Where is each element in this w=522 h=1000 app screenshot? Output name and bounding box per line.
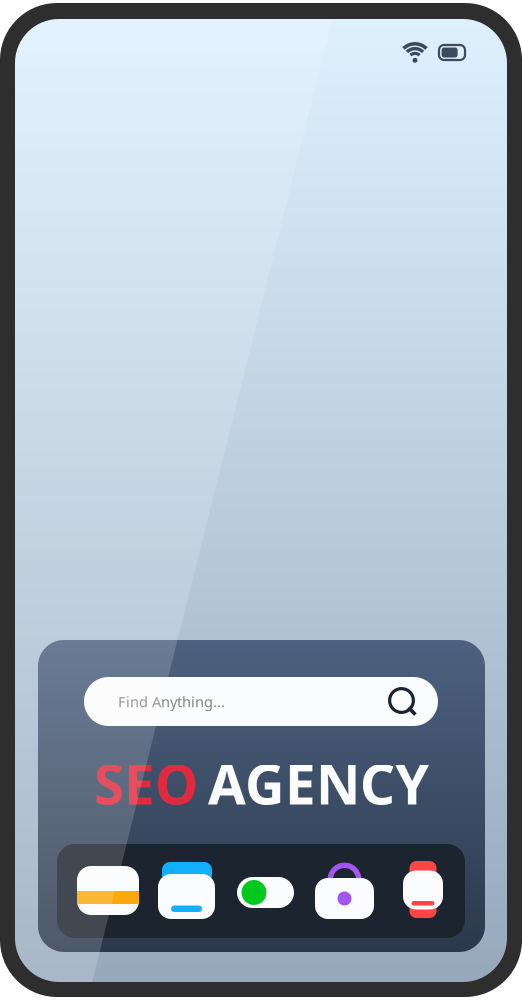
staticText: SEO xyxy=(94,747,198,820)
staticText: AGENCY xyxy=(208,747,429,820)
staticText: Find Anything... xyxy=(118,692,225,711)
button[interactable]: Settings xyxy=(237,877,294,908)
button[interactable]: Apple Watch xyxy=(403,861,443,918)
button[interactable]: Wallet xyxy=(77,866,139,915)
button[interactable]: Find Anything... xyxy=(84,677,438,726)
button[interactable]: Files xyxy=(158,862,215,919)
button[interactable]: Security xyxy=(315,862,374,919)
